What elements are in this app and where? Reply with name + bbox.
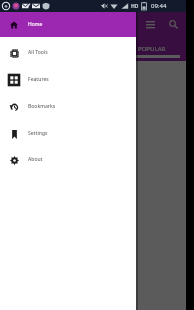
staticText: HD: [131, 3, 139, 10]
staticText: Features: [28, 76, 49, 83]
button[interactable]: Search: [165, 12, 181, 37]
button[interactable]: Bookmarks: [0, 93, 136, 120]
button[interactable]: Home: [0, 12, 136, 37]
button[interactable]: Features: [0, 66, 136, 93]
staticText: Settings: [28, 130, 48, 137]
button[interactable]: POPULAR: [124, 37, 180, 61]
button[interactable]: Open navigation menu: [142, 12, 158, 37]
staticText: Bookmarks: [28, 103, 56, 110]
staticText: All Tools: [28, 49, 48, 56]
button[interactable]: About: [0, 146, 136, 173]
button[interactable]: Settings: [0, 120, 136, 147]
button[interactable]: All Tools: [0, 39, 136, 66]
staticText: Home: [28, 21, 43, 28]
staticText: About: [28, 156, 43, 163]
staticText: 09:44: [151, 2, 167, 10]
staticText: POPULAR: [138, 45, 166, 53]
